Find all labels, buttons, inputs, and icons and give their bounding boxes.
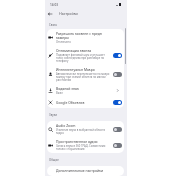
staticText: Выкл	[56, 91, 63, 94]
button[interactable]: Включено	[113, 53, 122, 58]
button[interactable]: Google Объектив	[47, 97, 124, 108]
button[interactable]: Назад	[46, 10, 54, 18]
staticText: Запись звука в 360 ГРАД. Совместимо толь…	[56, 144, 111, 150]
button[interactable]: Разрешить косвенн с предн камеры	[47, 29, 124, 46]
staticText: Отключено	[56, 40, 71, 43]
button[interactable]: Дополнительные настройки	[47, 166, 124, 176]
staticText: Связь	[49, 23, 57, 27]
staticText: Google Объектив	[56, 101, 85, 105]
button[interactable]: Audio Zoom	[47, 121, 124, 137]
staticText: Водяной знак	[56, 87, 79, 91]
staticText: Оптимизация звонка	[56, 49, 92, 53]
button[interactable]: Выключено	[113, 143, 122, 148]
staticText: Подавляет фоновый шум и улучшает голос с…	[56, 53, 111, 62]
button[interactable]: Интеллектуальн Макро	[47, 65, 124, 84]
staticText: 14:03	[50, 3, 58, 7]
staticText: Audio Zoom	[56, 124, 76, 128]
staticText: Разрешить косвенн с предн камеры	[56, 32, 110, 40]
staticText: Интеллектуальн Макро	[56, 68, 95, 72]
button[interactable]: Водяной знак	[47, 84, 124, 97]
button[interactable]: Оптимизация звонка	[47, 46, 124, 65]
staticText: Дополнительные настройки	[56, 169, 104, 173]
button[interactable]: Выключено	[113, 127, 122, 132]
staticText: Общие	[49, 158, 59, 162]
staticText: Звуки	[49, 113, 58, 117]
other: Открыть	[113, 88, 122, 93]
button[interactable]: Выключено	[113, 72, 122, 77]
button[interactable]: Включено	[113, 100, 122, 105]
staticText: Автоматически переключается на макро кам…	[56, 72, 111, 81]
staticText: Усиление звука в выбранной области кадра	[56, 128, 111, 134]
staticText: Настройки	[59, 11, 78, 16]
button[interactable]: Пространственное аудио	[47, 137, 124, 153]
staticText: Пространственное аудио	[56, 140, 98, 144]
